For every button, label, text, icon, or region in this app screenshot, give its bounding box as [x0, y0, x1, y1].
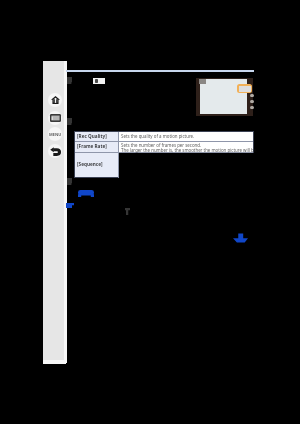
button[interactable]: Display — [48, 111, 62, 125]
staticText: [Frame Rate] — [77, 143, 107, 149]
button[interactable]: Home — [48, 93, 62, 107]
staticText: [Rec Quality] — [77, 133, 107, 139]
staticText: The larger the number is, the smoother t… — [121, 147, 258, 153]
staticText: Sets the number of frames per second. — [121, 142, 202, 148]
staticText: [Sequence] — [77, 161, 103, 167]
button[interactable]: Back — [48, 144, 62, 158]
staticText: Sets the quality of a motion picture. — [121, 133, 195, 139]
button[interactable]: Menu — [48, 127, 62, 141]
staticText: MENU — [49, 132, 62, 137]
